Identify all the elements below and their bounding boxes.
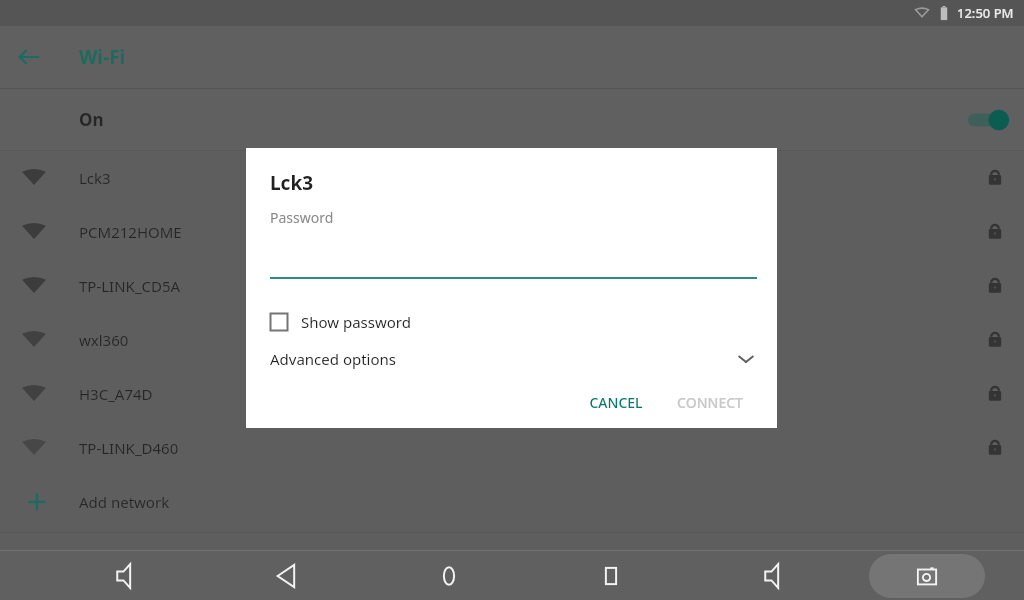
button[interactable]: CANCEL <box>579 385 653 420</box>
staticText: On <box>79 108 104 131</box>
staticText: Lck3 <box>270 170 314 196</box>
staticText: PCM212HOME <box>79 222 182 242</box>
staticText: H3C_A74D <box>79 384 153 404</box>
other: Secured network <box>983 382 1007 406</box>
button[interactable]: wxl360 <box>0 313 1024 367</box>
staticText: CANCEL <box>589 393 643 412</box>
staticText: Add network <box>79 492 170 512</box>
staticText: Lck3 <box>79 168 111 188</box>
button[interactable]: CONNECT <box>667 385 753 420</box>
button[interactable]: Back <box>239 551 335 600</box>
staticText: CONNECT <box>677 393 743 412</box>
button[interactable]: On <box>0 89 1024 150</box>
button[interactable]: Home <box>401 551 497 600</box>
button[interactable]: Lck3 <box>0 151 1024 205</box>
other: Secured network <box>983 328 1007 352</box>
button[interactable]: Back <box>8 36 50 78</box>
button[interactable]: TP-LINK_CD5A <box>0 259 1024 313</box>
other: Wi-Fi on <box>966 106 1010 134</box>
button[interactable] <box>270 259 757 279</box>
staticText: Password <box>270 208 334 227</box>
other: Secured network <box>983 274 1007 298</box>
staticText: Advanced options <box>270 349 397 369</box>
other: Secured network <box>983 436 1007 460</box>
button[interactable]: Advanced options <box>246 341 777 377</box>
staticText: 12:50 PM <box>957 4 1014 22</box>
button[interactable]: Screenshot <box>869 554 985 598</box>
staticText: Show password <box>301 312 411 332</box>
other: Secured network <box>983 220 1007 244</box>
staticText: wxl360 <box>79 330 129 350</box>
button[interactable]: H3C_A74D <box>0 367 1024 421</box>
staticText: Wi‑Fi <box>79 44 126 70</box>
staticText: TP-LINK_D460 <box>79 438 179 458</box>
button[interactable]: PCM212HOME <box>0 205 1024 259</box>
button[interactable]: Recent apps <box>563 551 659 600</box>
button[interactable]: Volume down <box>77 551 173 600</box>
button[interactable]: Volume up <box>725 551 821 600</box>
button[interactable]: Show password <box>270 305 411 339</box>
button[interactable]: Add network <box>0 475 1024 529</box>
staticText: TP-LINK_CD5A <box>79 276 181 296</box>
button[interactable]: TP-LINK_D460 <box>0 421 1024 475</box>
other: Secured network <box>983 166 1007 190</box>
